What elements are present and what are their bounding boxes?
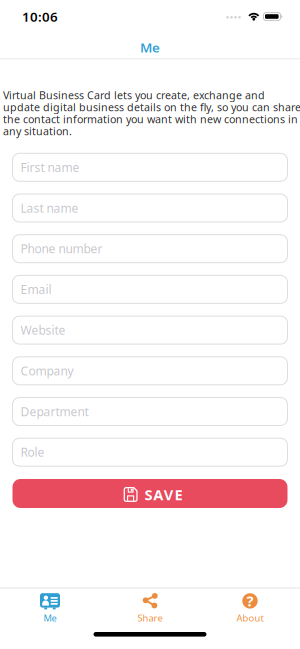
staticText: Email [20,281,51,297]
textField[interactable]: Website [20,315,270,345]
staticText: update digital business details on the f… [3,100,300,114]
textField[interactable]: Role [20,437,270,467]
staticText: Share [137,612,162,624]
staticText: SAVE [145,485,182,504]
staticText: Phone number [20,241,102,257]
textField[interactable]: Department [20,396,270,426]
textField[interactable]: Email [20,274,270,304]
staticText: Last name [20,200,78,216]
staticText: Company [20,363,73,379]
textField[interactable]: Last name [20,193,270,223]
staticText: Website [20,322,65,338]
button[interactable]: Me [8,583,92,629]
staticText: Role [20,444,44,460]
staticText: 10:06 [22,8,58,25]
staticText: Department [20,403,88,419]
textField[interactable]: Phone number [20,234,270,264]
textField[interactable]: First name [20,152,270,182]
staticText: About [236,612,263,624]
staticText: Virtual Business Card lets you create, e… [3,88,265,102]
staticText: any situation. [3,124,72,138]
staticText: the contact information you want with ne… [3,112,298,126]
staticText: First name [20,159,79,175]
button[interactable]: SAVE [12,479,287,508]
button[interactable]: ? [208,583,292,629]
button[interactable]: Share [108,583,192,629]
staticText: Me [140,38,160,56]
staticText: ? [246,591,253,610]
textField[interactable]: Company [20,356,270,386]
staticText: Me [43,612,56,624]
